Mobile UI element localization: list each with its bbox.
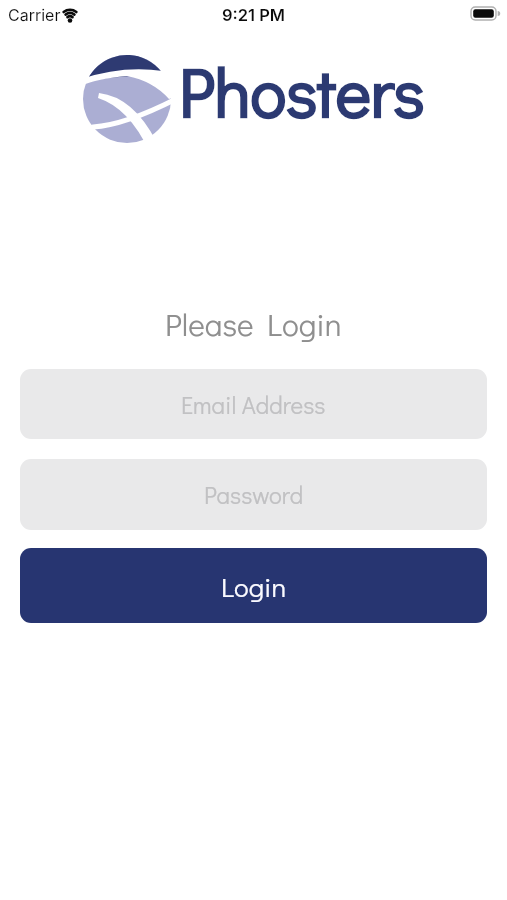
staticText: Login [221, 568, 287, 604]
staticText: Password [204, 479, 304, 510]
staticText: Please Login [165, 303, 342, 344]
button[interactable]: Email Address [20, 369, 487, 439]
button[interactable]: Login [20, 548, 487, 623]
staticText: Phosters [179, 47, 425, 121]
staticText: Email Address [181, 389, 326, 420]
staticText: Phosters [179, 47, 425, 121]
staticText: 9:21 PM [222, 5, 286, 25]
staticText: Carrier [8, 5, 61, 24]
button[interactable]: Password [20, 459, 487, 530]
